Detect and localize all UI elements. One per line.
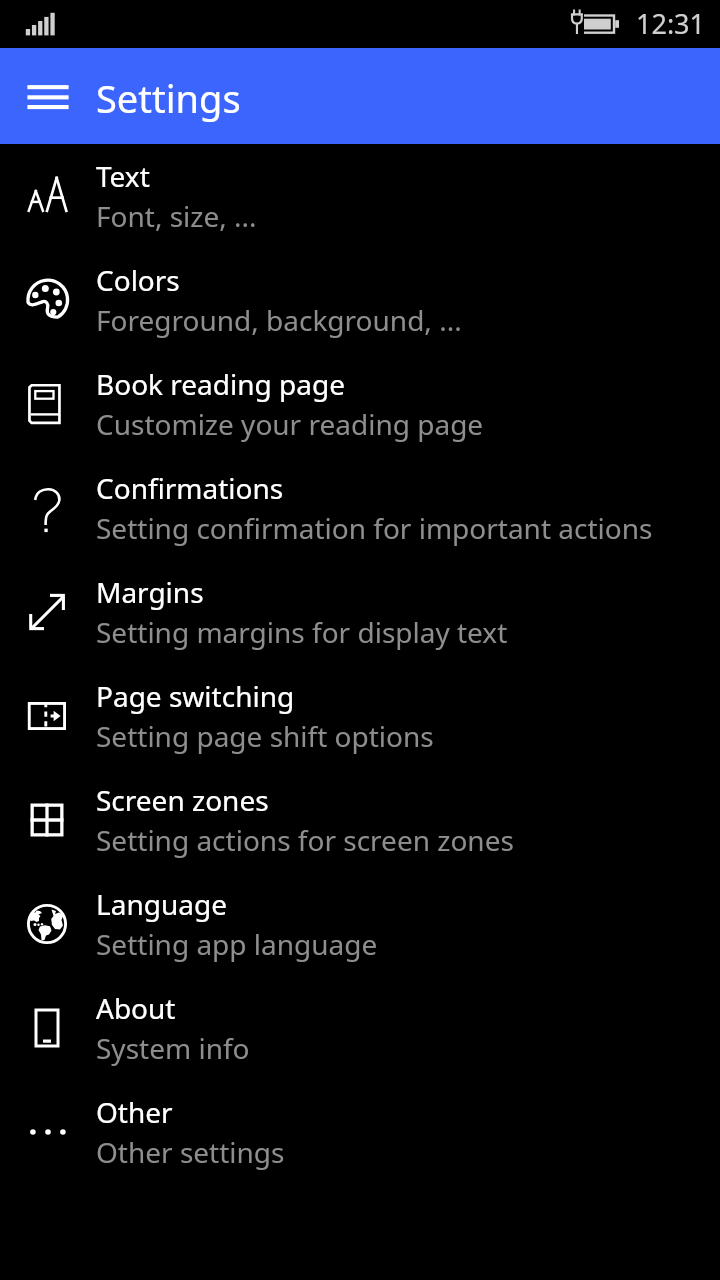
button[interactable]: Other [0,1080,720,1184]
staticText: Confirmations [96,469,284,507]
staticText: Setting confirmation for important actio… [96,509,653,547]
staticText: 12:31 [636,5,706,42]
staticText: Margins [96,573,204,611]
staticText: Text [96,157,150,195]
button[interactable]: Margins [0,560,720,664]
button[interactable]: Book reading page [0,352,720,456]
staticText: Other [96,1093,173,1131]
button[interactable]: Language [0,872,720,976]
staticText: Setting page shift options [96,717,434,755]
button[interactable]: Text [0,144,720,248]
staticText: Page switching [96,677,295,715]
staticText: Font, size, ... [96,197,257,235]
staticText: Colors [96,261,180,299]
staticText: Language [96,885,227,923]
staticText: Setting actions for screen zones [96,821,514,859]
button[interactable]: Colors [0,248,720,352]
button[interactable]: Screen zones [0,768,720,872]
staticText: Settings [96,72,241,124]
staticText: Setting margins for display text [96,613,508,651]
staticText: About [96,989,176,1027]
staticText: System info [96,1029,250,1067]
staticText: Screen zones [96,781,269,819]
button[interactable]: Open navigation menu [14,62,82,130]
button[interactable]: Confirmations [0,456,720,560]
staticText: Customize your reading page [96,405,484,443]
staticText: Setting app language [96,925,378,963]
staticText: Other settings [96,1133,285,1171]
staticText: Book reading page [96,365,346,403]
staticText: Foreground, background, ... [96,301,462,339]
button[interactable]: About [0,976,720,1080]
button[interactable]: Page switching [0,664,720,768]
